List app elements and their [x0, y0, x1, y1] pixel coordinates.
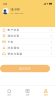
- staticText: 我的设置: [7, 34, 19, 37]
- staticText: 卡包: [7, 40, 13, 43]
- staticText: 我的: [44, 94, 48, 96]
- staticText: 服务: [25, 94, 29, 96]
- button[interactable]: 账户信息: [0, 27, 55, 33]
- button[interactable]: 我的: [37, 85, 55, 100]
- button[interactable]: 卡包: [0, 39, 55, 45]
- button[interactable]: 帮助与客服: [0, 51, 55, 57]
- button[interactable]: 退出登录: [0, 65, 50, 72]
- button[interactable]: 我的设置: [0, 33, 55, 39]
- staticText: 首页: [7, 94, 11, 96]
- button[interactable]: 消息通知: [0, 45, 55, 51]
- staticText: 9:41: [3, 2, 7, 5]
- staticText: 消息通知: [7, 46, 19, 49]
- staticText: 账户信息: [7, 28, 19, 31]
- staticText: 张小明: [11, 7, 20, 11]
- staticText: ID：8866 0421: [11, 12, 24, 15]
- button[interactable]: 服务: [18, 85, 37, 100]
- staticText: 退出登录: [19, 67, 31, 70]
- button[interactable]: 首页: [0, 85, 18, 100]
- staticText: 帮助与客服: [7, 52, 22, 55]
